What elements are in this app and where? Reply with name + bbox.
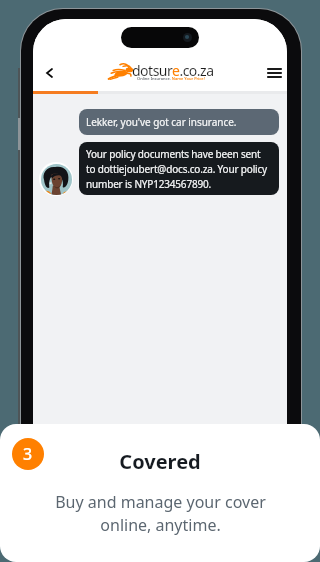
button[interactable]: Lekker, you've got car insurance.: [79, 109, 279, 135]
button[interactable]: 3: [12, 438, 44, 470]
staticText: Lekker, you've got car insurance.: [86, 115, 237, 129]
button[interactable]: dotsure.co.za: [108, 60, 248, 84]
button[interactable]: Back: [37, 61, 61, 85]
staticText: 3: [23, 443, 33, 465]
button[interactable]: Menu: [262, 61, 286, 85]
staticText: Covered: [119, 448, 201, 475]
staticText: Your policy documents have been sent to …: [86, 147, 270, 191]
button[interactable]: Your policy documents have been sent to …: [79, 142, 279, 195]
staticText: dotsure.co.za: [132, 61, 214, 80]
staticText: Online Insurance. Name Your Price!: [137, 76, 205, 81]
staticText: Buy and manage your cover online, anytim…: [55, 491, 266, 536]
